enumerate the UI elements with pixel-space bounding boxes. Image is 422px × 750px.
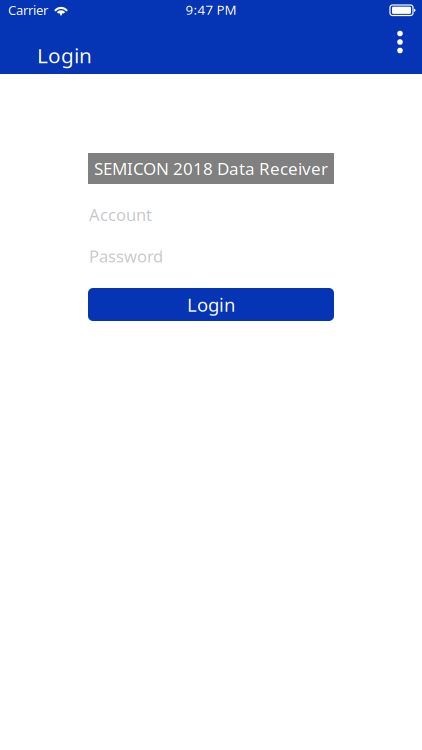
staticText: Carrier	[8, 1, 48, 19]
staticText: Account	[89, 203, 152, 226]
staticText: Password	[89, 245, 163, 267]
staticText: 9:47 PM	[185, 0, 236, 19]
staticText: SEMICON 2018 Data Receiver	[94, 157, 328, 180]
staticText: Login	[37, 41, 92, 69]
button[interactable]: Login	[88, 288, 334, 321]
button[interactable]: Account	[88, 202, 334, 226]
button[interactable]: More options	[380, 21, 420, 63]
button[interactable]: Password	[88, 244, 334, 268]
staticText: Login	[187, 292, 235, 317]
